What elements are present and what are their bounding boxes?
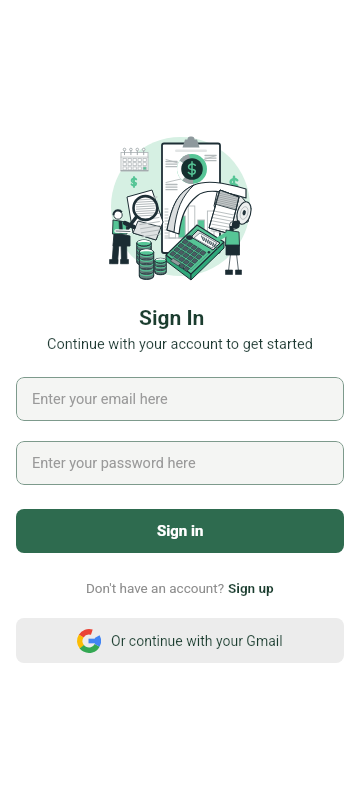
staticText: Sign in [157,522,204,540]
staticText: Or continue with your Gmail [111,633,283,649]
button[interactable]: Enter your password here [16,441,344,485]
button[interactable]: Enter your email here [16,377,344,421]
staticText: Sign up [228,580,274,596]
staticText: Enter your email here [32,391,168,408]
button[interactable]: Or continue with your Gmail [16,618,344,663]
staticText: Sign In [139,306,205,331]
button[interactable]: Sign up [228,580,274,596]
staticText: Continue with your account to get starte… [47,336,313,353]
button[interactable]: Sign in [16,509,344,553]
staticText: Don't have an account? [86,580,228,596]
staticText: Enter your password here [32,455,196,472]
